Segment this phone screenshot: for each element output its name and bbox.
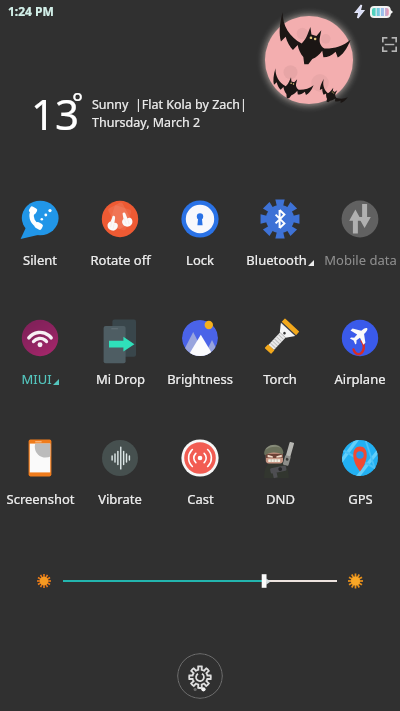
button[interactable]: Rotate off xyxy=(80,199,160,269)
staticText: Airplane xyxy=(334,370,386,388)
button[interactable]: Vibrate xyxy=(80,438,160,508)
staticText: GPS xyxy=(348,490,373,508)
button[interactable]: Cast xyxy=(160,438,240,508)
button[interactable]: Mi Drop xyxy=(80,318,160,388)
button[interactable]: Airplane xyxy=(320,318,400,388)
staticText: Vibrate xyxy=(98,490,142,508)
button[interactable]: Brightness xyxy=(160,318,240,388)
button[interactable]: Lock xyxy=(160,199,240,269)
staticText: Bluetooth xyxy=(246,251,307,269)
staticText: Torch xyxy=(263,370,297,388)
button[interactable]: MIUI xyxy=(0,318,80,388)
staticText: Cast xyxy=(187,490,214,508)
button[interactable]: Settings xyxy=(177,653,223,699)
button[interactable]: DND xyxy=(240,438,320,508)
button[interactable]: GPS xyxy=(320,438,400,508)
staticText: Screenshot xyxy=(6,490,75,508)
staticText: Silent xyxy=(23,251,57,269)
staticText: MIUI xyxy=(21,370,52,388)
staticText: ° xyxy=(72,84,84,119)
staticText: Rotate off xyxy=(90,251,151,269)
staticText: Thursday, March 2 xyxy=(92,114,201,131)
staticText: Lock xyxy=(186,251,214,269)
staticText: DND xyxy=(266,490,295,508)
button[interactable]: Screenshot xyxy=(0,438,80,508)
button[interactable]: Torch xyxy=(240,318,320,388)
staticText: Brightness xyxy=(167,370,233,388)
button[interactable]: Silent xyxy=(0,199,80,269)
button[interactable]: Bluetooth xyxy=(240,199,320,269)
staticText: 13 xyxy=(31,85,80,142)
button[interactable] xyxy=(0,568,400,594)
button[interactable]: Screen capture xyxy=(380,35,398,53)
staticText: 1:24 PM xyxy=(8,3,54,19)
button[interactable]: Mobile data xyxy=(320,199,400,269)
staticText: Sunny |Flat Kola by Zach| xyxy=(92,96,247,113)
staticText: Mobile data xyxy=(324,251,397,269)
staticText: Mi Drop xyxy=(96,370,145,388)
